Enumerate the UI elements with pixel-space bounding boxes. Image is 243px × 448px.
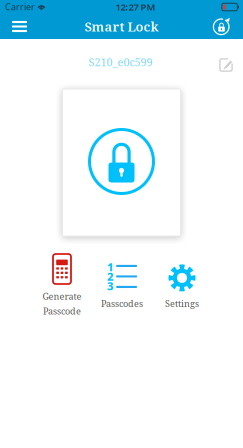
staticText: Smart Lock	[84, 18, 158, 35]
staticText: 1	[107, 259, 113, 275]
staticText: Carrier	[5, 1, 35, 13]
staticText: 2	[107, 269, 113, 284]
staticText: 3	[107, 278, 113, 293]
button[interactable]: Generate	[32, 253, 92, 317]
button[interactable]: Menu	[0, 14, 39, 39]
staticText: Passcode	[43, 305, 81, 317]
staticText: Passcodes	[101, 297, 143, 310]
button[interactable]: Settings	[152, 260, 212, 310]
button[interactable]: Relock device	[200, 14, 243, 39]
staticText: Generate	[42, 290, 81, 302]
button[interactable]: Lock or unlock	[62, 89, 180, 236]
staticText: S210_e0c599	[88, 55, 152, 69]
staticText: Settings	[165, 297, 199, 310]
button[interactable]: Rename device	[213, 54, 239, 76]
staticText: 12:27 PM	[116, 0, 156, 13]
button[interactable]: 1	[92, 260, 152, 310]
